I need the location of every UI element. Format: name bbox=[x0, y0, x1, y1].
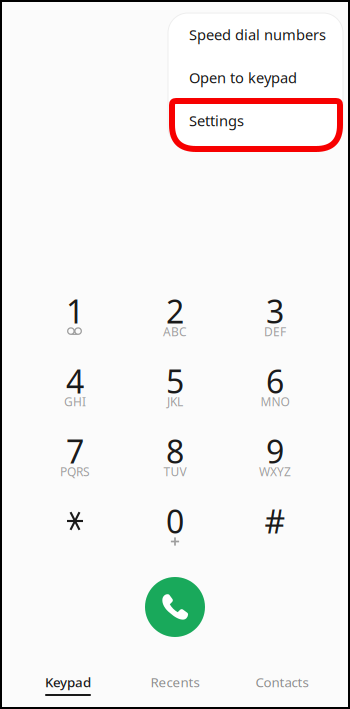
button[interactable]: 7 bbox=[25, 436, 125, 482]
staticText: DEF bbox=[264, 323, 286, 339]
staticText: Contacts bbox=[255, 673, 308, 691]
staticText: 2 bbox=[166, 290, 184, 332]
staticText: 1 bbox=[66, 290, 84, 332]
staticText: PQRS bbox=[60, 463, 90, 479]
staticText: 4 bbox=[66, 360, 84, 402]
staticText: Keypad bbox=[45, 673, 91, 691]
button[interactable]: 6 bbox=[225, 366, 325, 412]
staticText: 9 bbox=[266, 430, 284, 472]
button[interactable]: Call bbox=[145, 577, 205, 637]
button[interactable]: 2 bbox=[125, 296, 225, 342]
button[interactable] bbox=[25, 506, 125, 552]
button[interactable]: Keypad bbox=[14, 665, 121, 705]
staticText: 3 bbox=[266, 290, 284, 332]
button[interactable]: 4 bbox=[25, 366, 125, 412]
button[interactable]: Settings bbox=[168, 99, 343, 142]
button[interactable]: 5 bbox=[125, 366, 225, 412]
button[interactable]: 8 bbox=[125, 436, 225, 482]
staticText: 0 bbox=[166, 500, 184, 542]
button[interactable]: # bbox=[225, 506, 325, 552]
staticText: 6 bbox=[266, 360, 284, 402]
staticText: MNO bbox=[260, 393, 289, 409]
button[interactable]: 0 bbox=[125, 506, 225, 552]
staticText: JKL bbox=[167, 393, 183, 409]
button[interactable]: Speed dial numbers bbox=[168, 13, 343, 56]
staticText: Recents bbox=[150, 673, 199, 691]
staticText: Settings bbox=[189, 111, 244, 130]
button[interactable]: Contacts bbox=[228, 665, 335, 705]
staticText: GHI bbox=[64, 393, 86, 409]
button[interactable]: Open to keypad bbox=[168, 56, 343, 99]
button[interactable]: 3 bbox=[225, 296, 325, 342]
staticText: TUV bbox=[163, 463, 186, 479]
staticText: Speed dial numbers bbox=[189, 25, 326, 44]
staticText: 7 bbox=[66, 430, 84, 472]
staticText: 8 bbox=[166, 430, 184, 472]
staticText: # bbox=[264, 500, 285, 542]
staticText: Open to keypad bbox=[189, 68, 297, 87]
staticText: ABC bbox=[163, 323, 187, 339]
staticText: WXYZ bbox=[259, 463, 291, 479]
button[interactable]: Recents bbox=[121, 665, 228, 705]
staticText: 5 bbox=[166, 360, 184, 402]
button[interactable]: 1 bbox=[25, 296, 125, 342]
button[interactable]: 9 bbox=[225, 436, 325, 482]
